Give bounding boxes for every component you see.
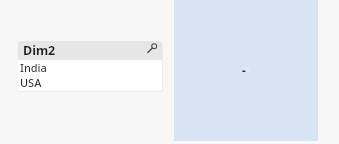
staticText: Dim2 bbox=[23, 42, 56, 59]
staticText: India bbox=[20, 60, 47, 74]
button[interactable]: Search bbox=[145, 44, 159, 58]
button[interactable]: India bbox=[18, 60, 162, 74]
button[interactable]: Dim2 bbox=[18, 41, 162, 60]
button[interactable]: USA bbox=[18, 74, 162, 90]
staticText: USA bbox=[20, 75, 42, 90]
staticText: - bbox=[242, 62, 246, 78]
